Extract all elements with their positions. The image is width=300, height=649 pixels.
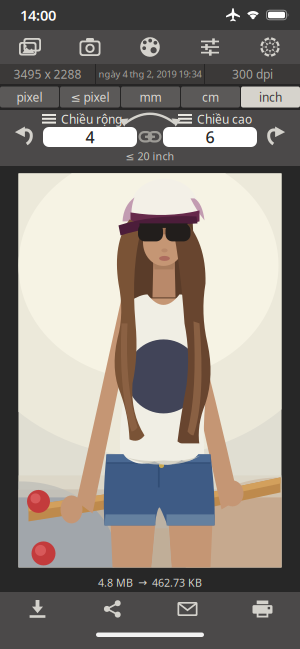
- button[interactable]: [225, 595, 300, 623]
- staticText: 3495 x 2288: [13, 66, 81, 82]
- staticText: Chiều cao: [197, 111, 252, 127]
- button[interactable]: pixel: [0, 86, 59, 107]
- staticText: 462.73 KB: [152, 575, 202, 590]
- button[interactable]: [120, 30, 180, 64]
- staticText: 14:00: [20, 5, 56, 25]
- staticText: 300 dpi: [232, 66, 273, 82]
- button[interactable]: [150, 595, 225, 623]
- button[interactable]: [75, 595, 150, 623]
- staticText: 4.8 MB: [98, 575, 133, 590]
- button[interactable]: [60, 30, 120, 64]
- staticText: mm: [139, 89, 161, 105]
- button[interactable]: [14, 125, 33, 144]
- button[interactable]: [138, 131, 161, 143]
- staticText: ≤ 20 inch: [125, 149, 174, 163]
- button[interactable]: Chiều rộng: [42, 111, 122, 127]
- staticText: ≤ pixel: [70, 89, 109, 105]
- button[interactable]: ≤ pixel: [60, 86, 120, 107]
- button[interactable]: [0, 595, 75, 623]
- button[interactable]: cm: [181, 86, 240, 107]
- button[interactable]: 6: [163, 127, 257, 147]
- button[interactable]: inch: [241, 86, 300, 107]
- button[interactable]: mm: [121, 86, 180, 107]
- staticText: Chiều rộng: [61, 111, 122, 127]
- button[interactable]: Chiều cao: [178, 111, 252, 127]
- button[interactable]: [180, 30, 240, 64]
- button[interactable]: [266, 125, 285, 144]
- staticText: cm: [202, 89, 219, 105]
- button[interactable]: [240, 30, 300, 64]
- staticText: →: [138, 576, 147, 588]
- button[interactable]: [0, 30, 60, 64]
- button[interactable]: 4: [43, 127, 137, 147]
- staticText: inch: [259, 89, 282, 105]
- staticText: ngày 4 thg 2, 2019 19:34: [98, 68, 201, 80]
- staticText: 4: [85, 126, 94, 148]
- staticText: 6: [205, 126, 214, 148]
- button[interactable]: [119, 111, 181, 127]
- staticText: pixel: [16, 89, 42, 105]
